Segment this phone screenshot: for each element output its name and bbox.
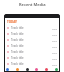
button[interactable]: tab <box>26 68 29 71</box>
staticText: 3:24 <box>52 63 57 66</box>
staticText: 3:24 <box>52 33 57 36</box>
staticText: Track title <box>11 32 24 36</box>
button[interactable]: Track title <box>4 55 60 61</box>
button[interactable]: tab <box>16 68 19 71</box>
staticText: 3:24 <box>52 57 57 60</box>
button[interactable]: Track title <box>4 37 60 43</box>
staticText: 3:24 <box>52 45 57 48</box>
button[interactable]: Track title <box>4 25 60 31</box>
staticText: Track title <box>11 44 24 48</box>
button[interactable]: Track title <box>4 31 60 37</box>
staticText: 3:24 <box>52 27 57 30</box>
staticText: Track title <box>11 50 24 54</box>
button[interactable]: tab <box>35 68 38 71</box>
button[interactable]: tab <box>45 68 48 71</box>
button[interactable]: Track title <box>4 49 60 55</box>
staticText: 3:24 <box>52 39 57 42</box>
button[interactable]: Track title <box>4 43 60 49</box>
staticText: Track title <box>11 62 24 66</box>
button[interactable]: tab <box>55 68 58 71</box>
staticText: Track title <box>11 38 24 42</box>
staticText: Recent Media <box>19 2 46 7</box>
staticText: Track title <box>11 56 24 60</box>
staticText: 3:24 <box>52 51 57 54</box>
button[interactable]: Track title <box>4 61 60 67</box>
staticText: Track title <box>11 26 24 30</box>
button[interactable]: tab <box>6 68 9 71</box>
staticText: TODAY <box>7 20 17 24</box>
